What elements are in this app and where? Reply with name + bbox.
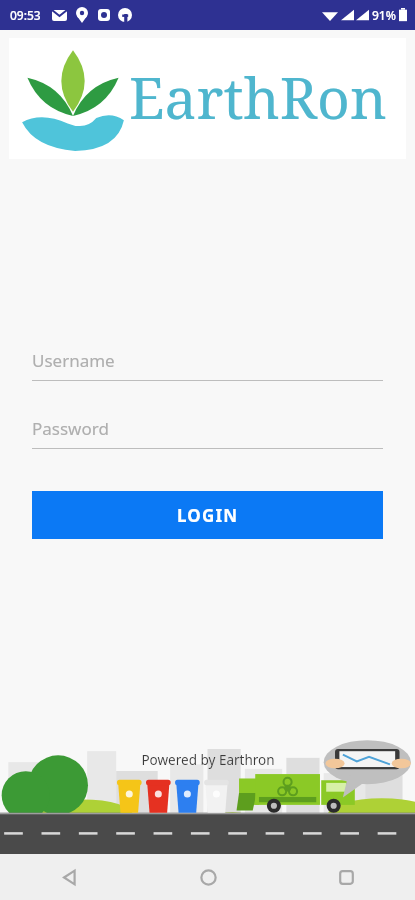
staticText: 09:53 bbox=[10, 7, 41, 23]
staticText: EarthRon bbox=[129, 58, 387, 136]
staticText: 91% bbox=[372, 7, 396, 23]
button[interactable]: Username bbox=[32, 349, 383, 381]
button[interactable]: Home bbox=[139, 854, 277, 900]
staticText: LOGIN bbox=[177, 504, 239, 527]
staticText: Password bbox=[32, 417, 109, 440]
button[interactable]: Back bbox=[0, 854, 139, 900]
staticText: Powered by Earthron bbox=[141, 751, 275, 769]
button[interactable]: Password bbox=[32, 417, 383, 449]
button[interactable]: Recent apps bbox=[277, 854, 415, 900]
staticText: Username bbox=[32, 349, 115, 372]
button[interactable]: LOGIN bbox=[32, 491, 383, 539]
